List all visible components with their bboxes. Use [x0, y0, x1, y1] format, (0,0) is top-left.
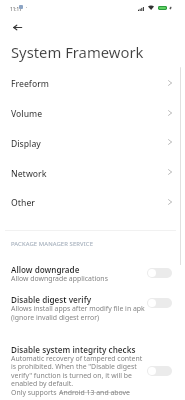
staticText: Network	[11, 168, 47, 180]
button[interactable]: Toggle	[147, 366, 172, 376]
staticText: Allows install apps after modify file in…	[11, 304, 145, 313]
button[interactable]	[0, 67, 185, 97]
staticText: Freeform	[11, 78, 49, 90]
staticText: Android 13 and above	[59, 388, 130, 397]
staticText: verify" function is turned on, it will b…	[11, 371, 132, 380]
staticText: Automatic recovery of tampered content	[11, 354, 143, 363]
button[interactable]: Back	[6, 16, 29, 39]
button[interactable]	[0, 290, 185, 326]
button[interactable]: Toggle	[147, 268, 172, 278]
staticText: Other	[11, 197, 35, 209]
button[interactable]	[0, 157, 185, 187]
staticText: (ignore invalid digest error)	[11, 313, 100, 322]
staticText: Allow downgrade	[11, 264, 80, 275]
staticText: System Framework	[11, 42, 144, 62]
staticText: Only supports	[11, 388, 59, 397]
button[interactable]: Toggle	[147, 298, 172, 308]
button[interactable]	[0, 339, 185, 400]
staticText: Disable system integrity checks	[11, 344, 136, 355]
button[interactable]	[0, 97, 185, 127]
staticText: PACKAGE MANAGER SERVICE	[11, 240, 94, 248]
staticText: Allow downgrade applications	[11, 274, 108, 283]
staticText: 11:17	[10, 6, 22, 12]
button[interactable]	[0, 259, 185, 289]
button[interactable]	[0, 127, 185, 157]
staticText: enabled by default.	[11, 379, 74, 388]
staticText: is prohibited. When the "Disable digest	[11, 362, 137, 371]
button[interactable]	[0, 186, 185, 216]
staticText: Display	[11, 138, 41, 150]
staticText: Volume	[11, 108, 43, 120]
staticText: Disable digest verify	[11, 294, 92, 305]
